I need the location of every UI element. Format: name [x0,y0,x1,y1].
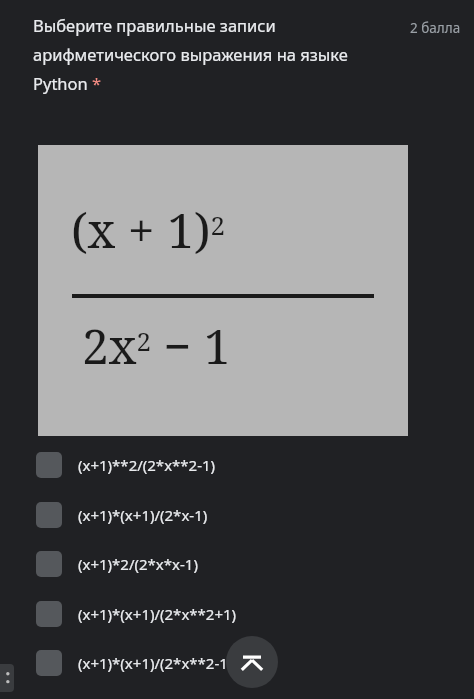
staticText: (x+1)*2/(2*x*x-1) [78,554,198,574]
button[interactable]: (x+1)*(x+1)/(2*x**2-1) [30,641,430,685]
staticText: (x+1)*(x+1)/(2*x-1) [78,505,208,525]
button[interactable]: More options [0,664,14,692]
button[interactable]: (x+1)*2/(2*x*x-1) [30,542,430,586]
staticText: 2 балла [410,19,461,37]
staticText: (x+1)*(x+1)/(2*x**2-1) [78,653,233,673]
button[interactable]: (x+1)*(x+1)/(2*x-1) [30,493,430,537]
staticText: Выберите правильные записи арифметическо… [33,14,373,95]
button[interactable]: (x+1)**2/(2*x**2-1) [30,443,430,487]
staticText: (x+1)**2/(2*x**2-1) [78,455,216,475]
button[interactable]: (x+1)*(x+1)/(2*x**2+1) [30,592,430,636]
staticText: 2x2 − 1 [82,313,231,378]
staticText: (x+1)*(x+1)/(2*x**2+1) [78,604,237,624]
button[interactable]: Collapse [226,636,278,688]
staticText: (x + 1)2 [71,197,226,262]
